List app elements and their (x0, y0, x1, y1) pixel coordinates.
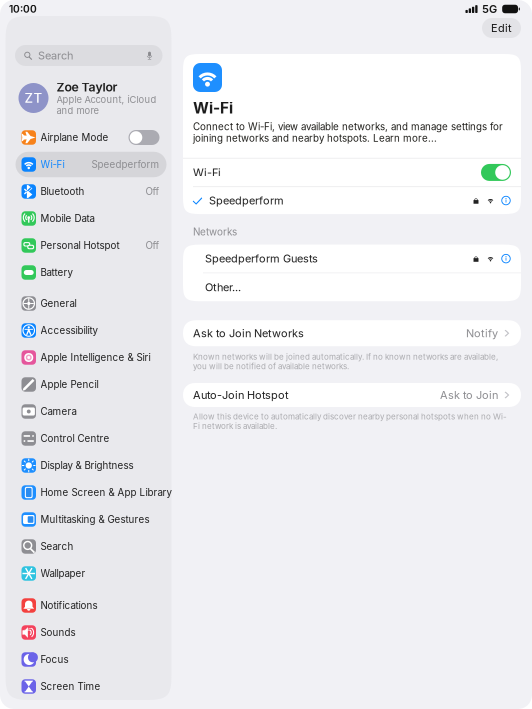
staticText: Search (38, 49, 73, 62)
staticText: Speedperform (209, 194, 284, 207)
button[interactable]: Apple Pencil (9, 371, 181, 398)
staticText: Ask to Join (440, 389, 498, 401)
staticText: Zoe Taylor (56, 80, 117, 94)
button[interactable]: Wi-Fi (9, 151, 167, 178)
staticText: Display & Brightness (40, 460, 133, 471)
staticText: Networks (193, 226, 237, 238)
staticText: Auto-Join Hotspot (193, 389, 289, 401)
staticText: Ask to Join Networks (193, 327, 304, 340)
button[interactable]: Home Screen & App Library (9, 479, 181, 506)
staticText: 10:00 (9, 3, 37, 15)
staticText: Off (145, 186, 159, 197)
button[interactable]: Sounds (9, 619, 167, 646)
staticText: Camera (40, 406, 76, 417)
button[interactable]: General (9, 290, 181, 317)
staticText: Accessibility (40, 325, 97, 336)
button[interactable]: Wallpaper (9, 560, 181, 587)
staticText: Sounds (40, 627, 75, 638)
staticText: Personal Hotspot (40, 240, 119, 251)
staticText: Screen Time (40, 681, 100, 692)
staticText: Control Centre (40, 433, 109, 444)
staticText: Apple Account, iCloud (56, 94, 156, 105)
staticText: and more (56, 105, 98, 116)
button[interactable]: Control Centre (9, 425, 181, 452)
staticText: Bluetooth (40, 186, 84, 197)
staticText: Apple Intelligence & Siri (40, 352, 150, 363)
staticText: Home Screen & App Library (40, 487, 171, 498)
button[interactable]: Ask to Join Networks (183, 320, 521, 346)
staticText: Notifications (40, 600, 97, 611)
button[interactable]: Mobile Data (9, 205, 167, 232)
button[interactable]: Auto-Join Hotspot (183, 383, 521, 407)
button[interactable]: ZT (9, 75, 167, 121)
staticText: General (40, 298, 76, 309)
staticText: Search (40, 541, 73, 552)
staticText: ZT (24, 90, 42, 106)
staticText: Speedperform (91, 159, 159, 170)
staticText: Wallpaper (40, 568, 85, 579)
staticText: Known networks will be joined automatica… (193, 352, 498, 371)
staticText: Airplane Mode (40, 132, 108, 143)
staticText: Wi-Fi (193, 99, 233, 117)
staticText: 5G (482, 3, 497, 15)
button[interactable]: Battery (9, 259, 167, 286)
staticText: Mobile Data (40, 213, 94, 224)
button[interactable]: Bluetooth (9, 178, 167, 205)
staticText: Off (145, 240, 159, 251)
staticText: Speedperform Guests (205, 252, 318, 265)
staticText: Wi-Fi (193, 166, 221, 179)
button[interactable]: Edit (482, 18, 521, 38)
button[interactable]: Camera (9, 398, 181, 425)
button[interactable]: Accessibility (9, 317, 181, 344)
staticText: Wi-Fi (40, 159, 64, 170)
button[interactable]: Personal Hotspot (9, 232, 167, 259)
staticText: Battery (40, 267, 72, 278)
staticText: Other... (205, 281, 241, 294)
staticText: Connect to Wi-Fi, view available network… (193, 121, 503, 144)
staticText: Focus (40, 654, 68, 665)
button[interactable]: Focus (9, 646, 167, 673)
staticText: Apple Pencil (40, 379, 98, 390)
staticText: Allow this device to automatically disco… (193, 412, 507, 431)
button[interactable]: Airplane Mode (9, 124, 167, 151)
button[interactable]: Screen Time (9, 673, 167, 700)
button[interactable]: Apple Intelligence & Siri (9, 344, 181, 371)
button[interactable]: Notifications (9, 592, 167, 619)
button[interactable]: Display & Brightness (9, 452, 181, 479)
staticText: Edit (491, 22, 512, 34)
button[interactable]: Multitasking & Gestures (9, 506, 181, 533)
button[interactable]: Search (9, 533, 181, 560)
staticText: Notify (466, 327, 498, 340)
staticText: Multitasking & Gestures (40, 514, 149, 525)
